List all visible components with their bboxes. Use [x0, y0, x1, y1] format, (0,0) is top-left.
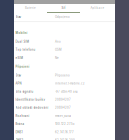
button[interactable]: Síla signálu	[14, 88, 115, 96]
staticText: DNS1	[16, 130, 23, 134]
button[interactable]: eSIM	[14, 54, 115, 62]
button[interactable]: Dual SIM	[14, 38, 115, 46]
button[interactable]: Rozhraní	[14, 112, 115, 120]
button[interactable]: Stav	[14, 13, 115, 21]
button[interactable]: Aplikace	[80, 4, 115, 13]
button[interactable]: DNS2	[14, 136, 115, 140]
button[interactable]: Síť	[47, 4, 80, 13]
button[interactable]: Stav	[14, 71, 115, 79]
staticText: Připojení	[16, 65, 30, 68]
staticText: Připojeno	[55, 74, 70, 77]
staticText: 20894207	[55, 98, 71, 101]
staticText: APN	[16, 82, 22, 85]
staticText: Mobilní	[16, 31, 28, 35]
staticText: rmnet_data1	[55, 114, 71, 118]
staticText: DNS2	[16, 139, 24, 140]
staticText: Identifikátor buňky	[16, 98, 46, 101]
staticText: Baterie	[25, 6, 36, 10]
button[interactable]: Baterie	[14, 4, 47, 13]
staticText: Brána	[16, 122, 25, 126]
button[interactable]: Identifikátor buňky	[14, 96, 115, 104]
button[interactable]: APN	[14, 79, 115, 88]
staticText: eSIM	[16, 56, 23, 60]
staticText: 62.141.16.177	[55, 130, 74, 134]
staticText: Stav	[16, 74, 22, 77]
staticText: Odpojeno	[55, 15, 70, 19]
staticText: Síla signálu	[16, 90, 34, 93]
button[interactable]: Kód oblasti sledování	[14, 104, 115, 112]
staticText: -97 dBm 40 asu	[55, 90, 78, 93]
staticText: Typ telefonu	[16, 48, 36, 51]
staticText: GSM	[55, 48, 61, 51]
staticText: Dual SIM	[16, 40, 29, 43]
staticText: 20894207	[55, 106, 71, 109]
staticText: Rozhraní	[16, 114, 30, 118]
staticText: Ne	[55, 56, 59, 60]
staticText: 62.141.16.200	[55, 139, 75, 140]
staticText: Síť	[61, 6, 65, 10]
button[interactable]: Typ telefonu	[14, 46, 115, 54]
button[interactable]: Brána	[14, 120, 115, 128]
button[interactable]: DNS1	[14, 128, 115, 136]
staticText: Ano	[55, 40, 61, 43]
staticText: Kód oblasti sledování	[16, 106, 49, 109]
staticText: Stav	[16, 15, 22, 19]
staticText: 100.122.27.5x	[55, 122, 74, 126]
staticText: internet.t-mobile.cz	[55, 82, 85, 85]
staticText: Aplikace	[90, 6, 104, 10]
